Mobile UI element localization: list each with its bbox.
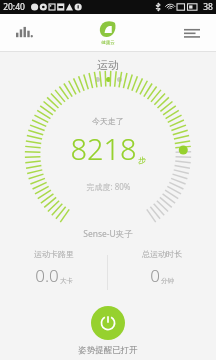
staticText: 今天走了 bbox=[92, 116, 124, 126]
button[interactable]: Page bbox=[117, 77, 122, 82]
button[interactable]: Page bbox=[106, 77, 111, 82]
staticText: 0 bbox=[150, 264, 160, 287]
button[interactable]: 总运动时长 bbox=[108, 249, 216, 295]
staticText: 步 bbox=[138, 155, 146, 165]
staticText: 0.0 bbox=[35, 264, 59, 287]
button[interactable]: Posture reminder toggle bbox=[91, 306, 125, 340]
staticText: 大卡 bbox=[60, 277, 73, 285]
staticText: 分钟 bbox=[161, 277, 174, 285]
button[interactable]: 运动卡路里 bbox=[0, 249, 107, 295]
staticText: 8218 bbox=[70, 129, 137, 168]
staticText: 总运动时长 bbox=[142, 249, 182, 259]
staticText: 完成度: 80% bbox=[86, 181, 131, 192]
staticText: 运动 bbox=[97, 58, 119, 72]
button[interactable]: Statistics bbox=[8, 17, 40, 49]
button[interactable]: Menu bbox=[176, 17, 208, 49]
staticText: 姿势提醒已打开 bbox=[78, 345, 138, 356]
staticText: 38 bbox=[203, 1, 213, 13]
staticText: 健康云 bbox=[101, 40, 115, 46]
button[interactable]: Logo bbox=[99, 21, 117, 46]
staticText: 运动卡路里 bbox=[34, 249, 74, 259]
button[interactable]: Page bbox=[95, 77, 100, 82]
staticText: Sense-U夹子 bbox=[83, 228, 133, 240]
staticText: 20:40 bbox=[3, 1, 25, 13]
